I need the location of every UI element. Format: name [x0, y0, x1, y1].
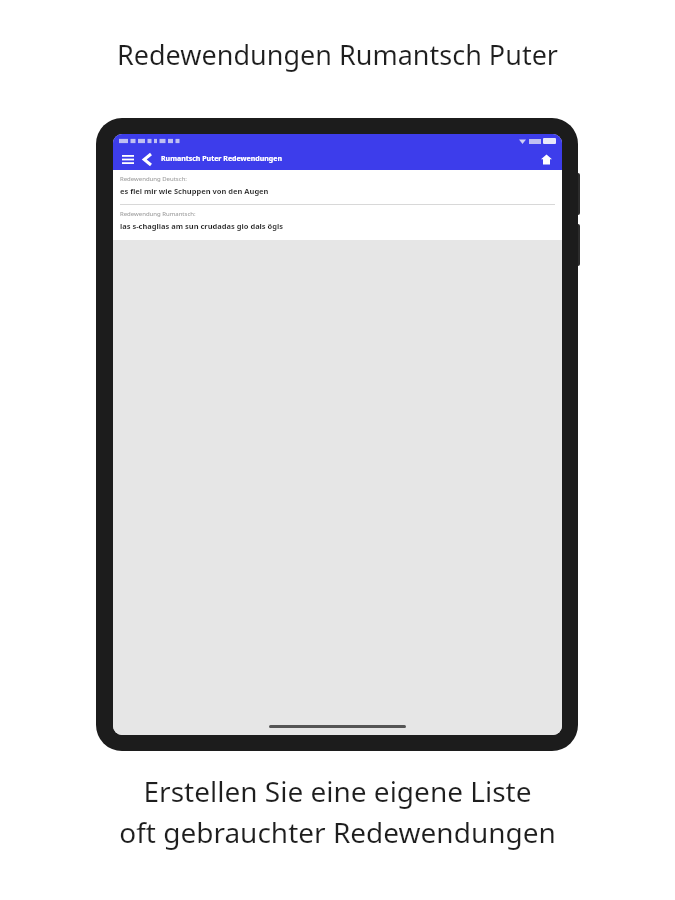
- staticText: Rumantsch Puter Redewendungen: [161, 154, 282, 164]
- staticText: las s-chaglias am sun crudadas gio dals …: [120, 221, 283, 231]
- staticText: Redewendungen Rumantsch Puter: [0, 36, 675, 73]
- staticText: Redewendung Rumantsch:: [120, 210, 196, 218]
- staticText: oft gebrauchter Redewendungen: [0, 813, 675, 851]
- button[interactable]: Home: [536, 149, 556, 169]
- button[interactable]: Redewendung Rumantsch:: [113, 205, 562, 240]
- staticText: es fiel mir wie Schuppen von den Augen: [120, 186, 269, 196]
- button[interactable]: Menu: [119, 151, 136, 168]
- staticText: Erstellen Sie eine eigene Liste: [0, 772, 675, 810]
- staticText: Redewendung Deutsch:: [120, 175, 187, 183]
- button[interactable]: Redewendung Deutsch:: [113, 170, 562, 205]
- button[interactable]: Back: [138, 151, 155, 168]
